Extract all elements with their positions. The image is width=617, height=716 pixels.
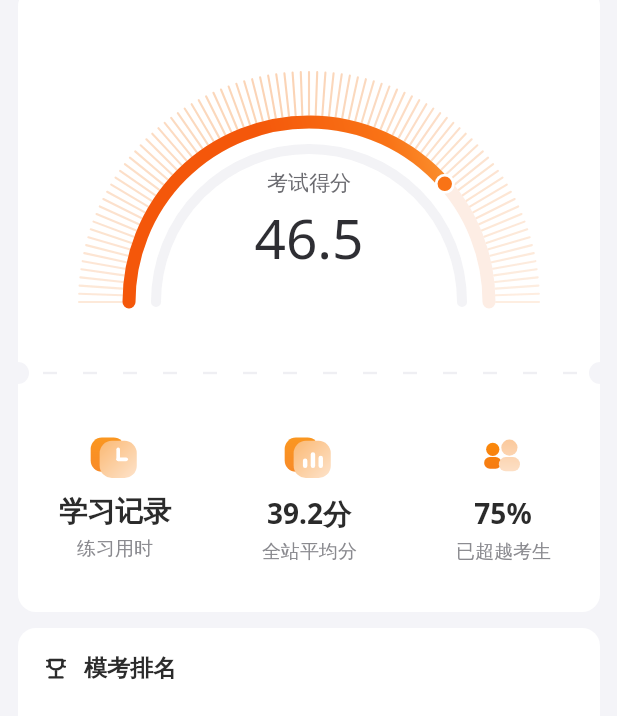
other: Trophy — [42, 655, 70, 683]
staticText: 模考排名 — [84, 654, 176, 683]
button[interactable]: 学习记录 — [18, 428, 212, 598]
button[interactable]: 75% — [406, 428, 600, 598]
staticText: 考试得分 — [267, 170, 351, 196]
staticText: 75% — [474, 494, 532, 532]
staticText: 练习用时 — [77, 537, 153, 561]
button[interactable]: 39.2分 — [212, 428, 406, 598]
staticText: 已超越考生 — [456, 540, 551, 564]
staticText: 46.5 — [254, 200, 364, 275]
staticText: 全站平均分 — [262, 540, 357, 564]
staticText: 学习记录 — [59, 494, 171, 529]
staticText: 39.2分 — [267, 494, 351, 532]
button[interactable]: Trophy — [18, 628, 600, 716]
